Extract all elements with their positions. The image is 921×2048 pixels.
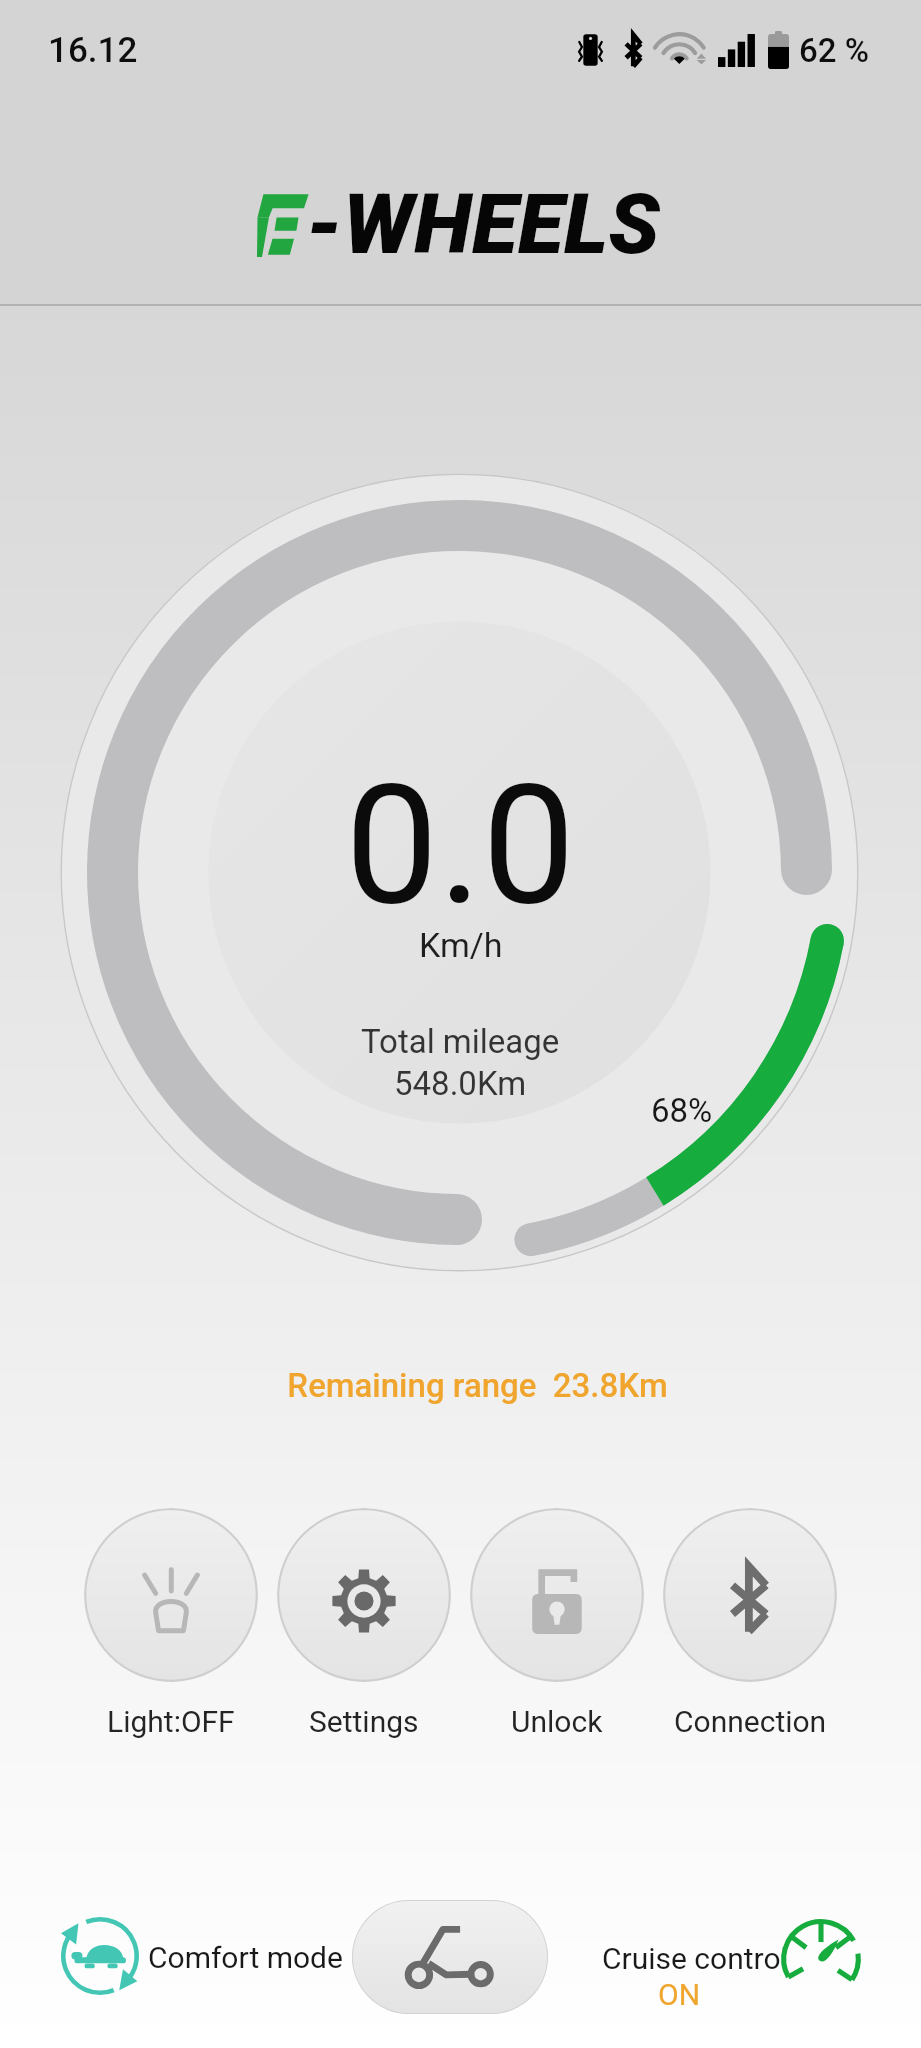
staticText: 0.0 — [345, 748, 576, 943]
button[interactable]: Unlock — [470, 1508, 644, 1739]
staticText: Settings — [309, 1704, 419, 1739]
button[interactable]: Settings — [277, 1508, 451, 1739]
staticText: Remaining range 23.8Km — [17, 1366, 921, 1405]
staticText: 68% — [651, 1091, 713, 1130]
staticText: Cruise control — [602, 1941, 788, 1976]
button[interactable]: Connection — [663, 1508, 837, 1739]
staticText: Light:OFF — [107, 1704, 235, 1739]
button[interactable]: Comfort mode — [56, 1912, 343, 2000]
staticText: 62 % — [799, 31, 870, 70]
staticText: 548.0Km — [394, 1064, 527, 1103]
staticText: ON — [658, 1977, 701, 2012]
staticText: -WHEELS — [306, 175, 660, 273]
button[interactable]: Light:OFF — [84, 1508, 258, 1739]
button[interactable]: Cruise control — [596, 1900, 866, 2014]
staticText: Comfort mode — [148, 1940, 343, 1975]
staticText: 16.12 — [48, 30, 138, 71]
staticText: Connection — [674, 1704, 827, 1739]
staticText: Unlock — [511, 1704, 603, 1739]
staticText: Km/h — [419, 925, 503, 965]
staticText: Total mileage — [361, 1022, 560, 1061]
button[interactable]: Scooter — [352, 1900, 548, 2014]
